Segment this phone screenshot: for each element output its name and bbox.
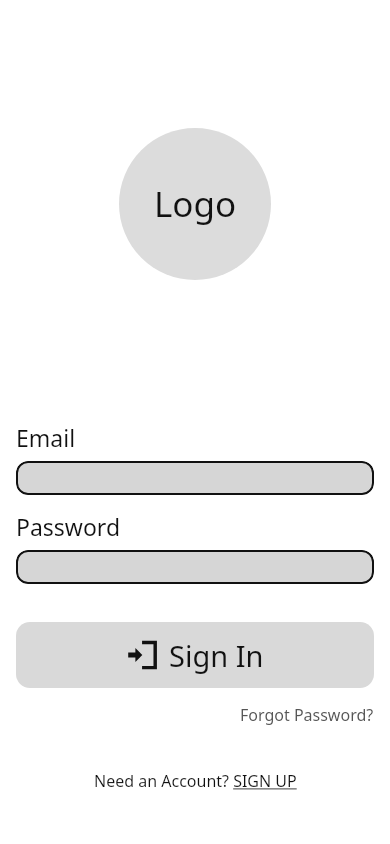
staticText: Logo xyxy=(154,180,237,228)
button[interactable]: Logo xyxy=(119,128,271,280)
button[interactable]: Sign In xyxy=(16,622,374,688)
button[interactable]: Need an Account? SIGN UP xyxy=(90,766,301,796)
button[interactable] xyxy=(16,550,374,584)
staticText: Email xyxy=(16,422,76,453)
staticText: Password xyxy=(16,511,121,542)
staticText: Sign In xyxy=(169,636,264,675)
other: Sign In xyxy=(127,640,157,670)
button[interactable]: Forgot Password? xyxy=(240,700,390,730)
button[interactable] xyxy=(16,461,374,495)
